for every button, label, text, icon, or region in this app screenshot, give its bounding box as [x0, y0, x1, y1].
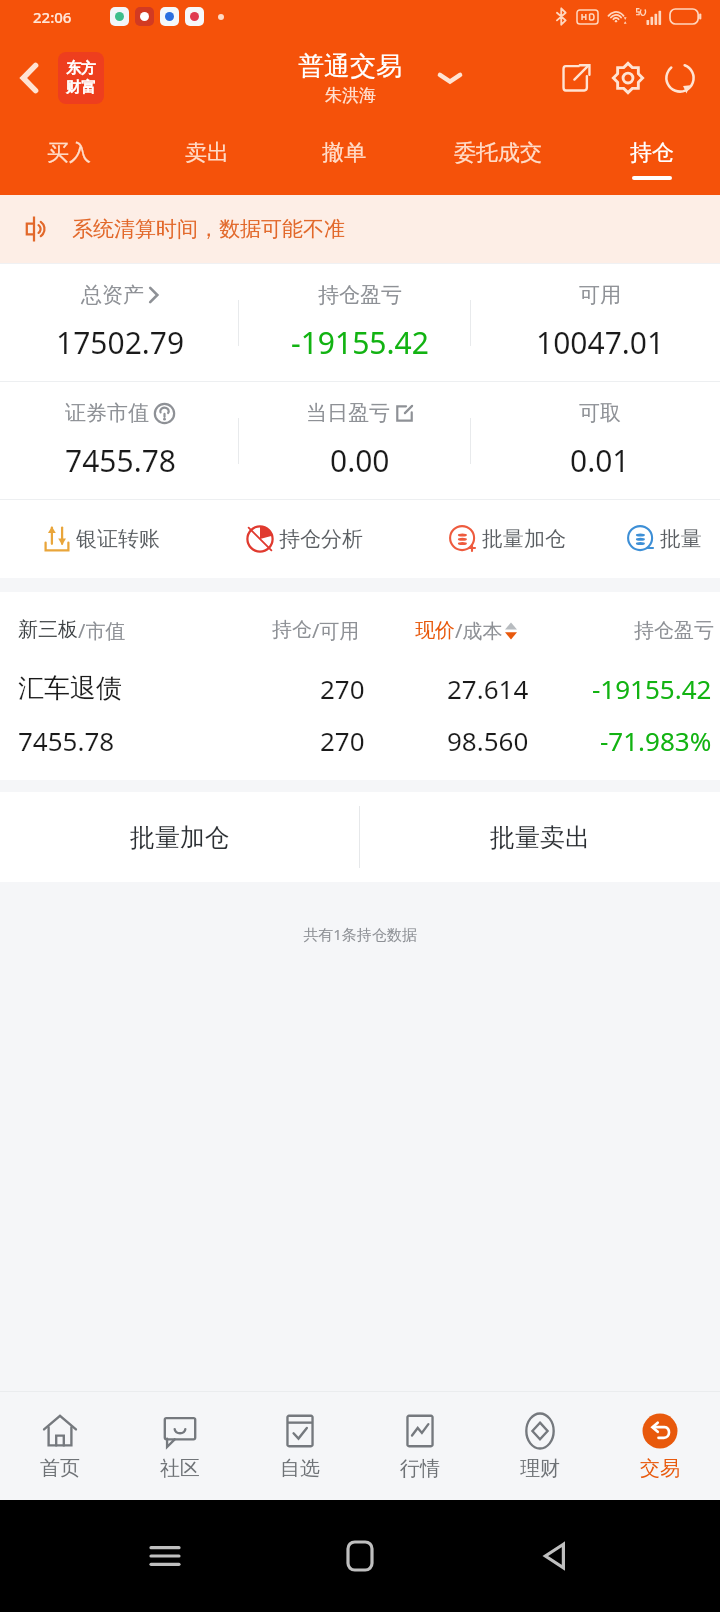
button[interactable]: 返回: [6, 54, 54, 102]
staticText: 委托成交: [454, 139, 542, 167]
staticText: 27.614: [447, 671, 529, 706]
staticText: 社区: [160, 1456, 200, 1481]
staticText: /成本: [455, 617, 503, 644]
staticText: 交易: [640, 1456, 680, 1481]
button[interactable]: 可用: [480, 264, 720, 381]
staticText: 当日盈亏: [306, 400, 390, 426]
staticText: 270: [320, 671, 365, 706]
staticText: 买入: [47, 139, 91, 167]
button[interactable]: 普通交易: [298, 50, 402, 106]
button[interactable]: 社区: [120, 1392, 240, 1500]
staticText: 98.560: [447, 723, 529, 758]
button[interactable]: 委托成交: [412, 123, 583, 195]
staticText: 批量加仓: [130, 822, 230, 853]
staticText: 持仓盈亏: [634, 618, 714, 643]
staticText: 持仓分析: [279, 526, 363, 552]
staticText: 持仓: [272, 617, 312, 642]
staticText: 东方: [66, 59, 96, 78]
staticText: 财富: [66, 78, 96, 97]
staticText: 批量: [660, 526, 702, 552]
button[interactable]: 理财: [480, 1392, 600, 1500]
staticText: 银证转账: [76, 526, 160, 552]
button[interactable]: 当日盈亏: [240, 382, 480, 499]
staticText: 撤单: [322, 139, 366, 167]
button[interactable]: 撤单: [275, 123, 412, 195]
staticText: -19155.42: [592, 671, 712, 706]
staticText: -71.983%: [600, 723, 712, 758]
staticText: 270: [320, 723, 365, 758]
staticText: 共有1条持仓数据: [0, 924, 720, 944]
staticText: 7455.78: [65, 440, 176, 481]
button[interactable]: 可取: [480, 382, 720, 499]
staticText: 可取: [579, 400, 621, 426]
staticText: 批量卖出: [490, 822, 590, 853]
button[interactable]: 银证转账: [0, 500, 202, 578]
staticText: 0.01: [570, 440, 630, 481]
staticText: 持仓盈亏: [318, 282, 402, 308]
staticText: 总资产: [81, 282, 144, 308]
button[interactable]: 分享: [550, 52, 602, 104]
staticText: 系统清算时间，数据可能不准: [72, 216, 345, 242]
button[interactable]: 汇车退债: [0, 654, 720, 780]
button[interactable]: 首页: [0, 1392, 120, 1500]
button[interactable]: 批量: [608, 500, 720, 578]
button[interactable]: 买入: [0, 123, 138, 195]
staticText: 行情: [400, 1456, 440, 1481]
button[interactable]: 返回: [525, 1526, 585, 1586]
button[interactable]: 自选: [240, 1392, 360, 1500]
staticText: 理财: [520, 1456, 560, 1481]
staticText: 0.00: [330, 440, 390, 481]
staticText: 持仓: [630, 139, 674, 167]
button[interactable]: 刷新: [654, 52, 706, 104]
button[interactable]: 主屏幕: [330, 1526, 390, 1586]
button[interactable]: 批量卖出: [360, 792, 720, 882]
staticText: -19155.42: [291, 322, 429, 363]
staticText: 证券市值: [65, 400, 149, 426]
staticText: /可用: [312, 617, 360, 644]
button[interactable]: 设置: [602, 52, 654, 104]
button[interactable]: 交易: [600, 1392, 720, 1500]
button[interactable]: 批量加仓: [405, 500, 608, 578]
staticText: 卖出: [185, 139, 229, 167]
staticText: 22:06: [33, 7, 72, 27]
button[interactable]: 批量加仓: [0, 792, 359, 882]
staticText: 10047.01: [536, 322, 665, 363]
button[interactable]: 持仓: [583, 123, 720, 195]
staticText: 新三板: [18, 617, 78, 642]
button[interactable]: 证券市值: [0, 382, 240, 499]
staticText: 汇车退债: [18, 672, 122, 705]
staticText: /市值: [78, 617, 126, 644]
staticText: 可用: [579, 282, 621, 308]
button[interactable]: 切换账户: [430, 58, 470, 98]
button[interactable]: 行情: [360, 1392, 480, 1500]
staticText: 首页: [40, 1456, 80, 1481]
button[interactable]: 持仓分析: [202, 500, 405, 578]
button[interactable]: 最近任务: [135, 1526, 195, 1586]
staticText: 7455.78: [18, 723, 115, 758]
button[interactable]: 总资产: [0, 264, 240, 381]
staticText: 批量加仓: [482, 526, 566, 552]
staticText: 普通交易: [298, 50, 402, 83]
button[interactable]: 东方: [58, 52, 104, 104]
staticText: 现价: [415, 618, 455, 643]
button[interactable]: 系统清算时间，数据可能不准: [0, 195, 720, 263]
staticText: 自选: [280, 1456, 320, 1481]
staticText: 朱洪海: [325, 85, 376, 106]
button[interactable]: 持仓盈亏: [240, 264, 480, 381]
button[interactable]: 卖出: [138, 123, 275, 195]
staticText: 17502.79: [56, 322, 185, 363]
